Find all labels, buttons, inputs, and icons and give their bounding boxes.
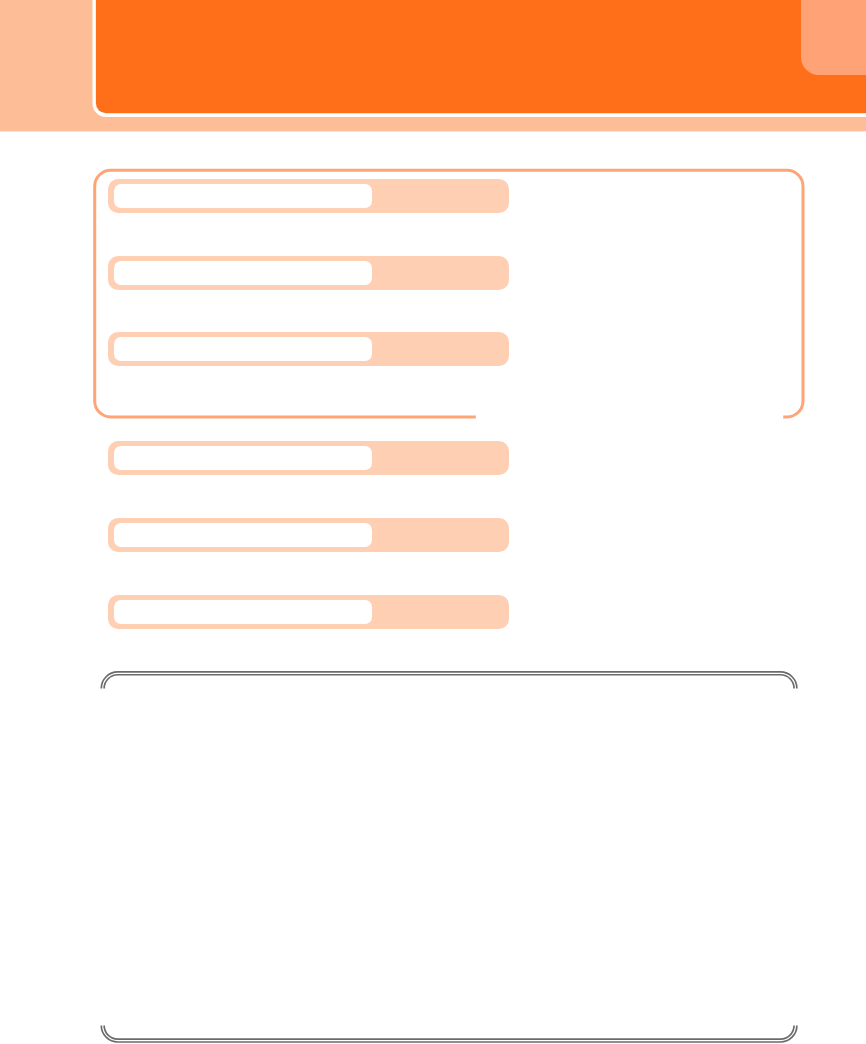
button[interactable]: Account xyxy=(801,0,866,75)
button[interactable]: List item placeholder xyxy=(108,595,509,629)
button[interactable]: Content area placeholder xyxy=(101,672,797,1042)
button[interactable]: App bar xyxy=(0,0,866,113)
button[interactable]: List item placeholder xyxy=(108,179,509,213)
button[interactable]: List item placeholder xyxy=(108,441,509,475)
button[interactable]: List item placeholder xyxy=(108,332,509,366)
button[interactable]: List item placeholder xyxy=(108,518,509,552)
button[interactable]: List item placeholder xyxy=(108,256,509,290)
